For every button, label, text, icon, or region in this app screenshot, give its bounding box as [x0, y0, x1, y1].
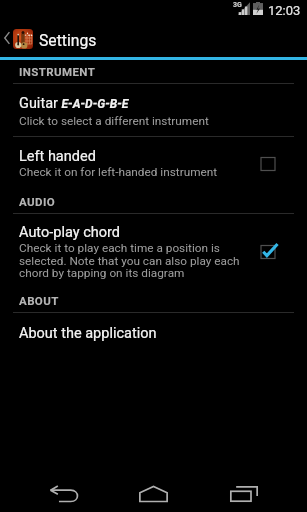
button[interactable]: Back [0, 459, 103, 512]
staticText: Check it on for left-handed instrument [19, 165, 218, 179]
button[interactable]: Navigate up [0, 24, 34, 52]
staticText: Left handed [19, 148, 96, 165]
staticText: 3G [233, 1, 242, 9]
staticText: Guitar E-A-D-G-B-E [19, 95, 129, 112]
staticText: 12:03 [268, 3, 301, 18]
button[interactable]: Left handed [0, 137, 307, 184]
button[interactable]: About the application [0, 313, 307, 352]
button[interactable]: Recent apps [205, 459, 307, 512]
staticText: AUDIO [19, 195, 55, 208]
staticText: About the application [19, 325, 157, 342]
staticText: Click to select a different instrument [19, 114, 209, 128]
staticText: ABOUT [19, 294, 59, 307]
button[interactable]: Auto-play chord [0, 214, 307, 286]
button[interactable]: Guitar E-A-D-G-B-E [0, 84, 307, 136]
staticText: Auto-play chord [19, 224, 120, 241]
staticText: Settings [39, 31, 97, 49]
staticText: INSTRUMENT [19, 65, 96, 78]
button[interactable]: Home [103, 459, 205, 512]
staticText: Check it to play each time a position is… [19, 241, 240, 280]
